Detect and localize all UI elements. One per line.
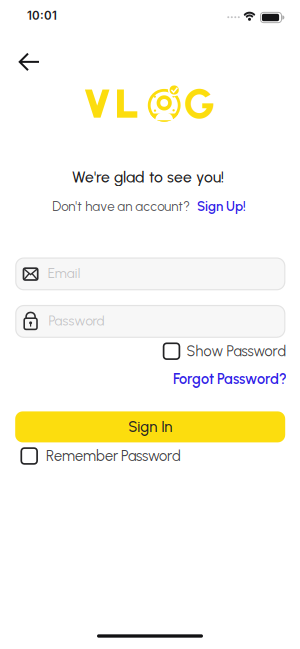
- staticText: G: [184, 79, 216, 128]
- button[interactable]: Show Password: [164, 343, 287, 360]
- staticText: Email: [48, 265, 81, 281]
- staticText: Don't have an account?: [52, 198, 190, 214]
- staticText: We're glad to see you!: [72, 168, 224, 186]
- staticText: Sign Up!: [197, 198, 246, 214]
- button[interactable]: Remember Password: [21, 447, 181, 465]
- button[interactable]: Email: [16, 258, 285, 290]
- button[interactable]: Back: [7, 40, 51, 84]
- staticText: Show Password: [187, 343, 287, 360]
- staticText: Forgot Password?: [173, 370, 287, 388]
- button[interactable]: Sign Up!: [197, 198, 246, 214]
- button[interactable]: Forgot Password?: [173, 370, 287, 388]
- button[interactable]: Sign In: [15, 411, 285, 442]
- staticText: Sign In: [128, 418, 172, 436]
- staticText: Remember Password: [46, 447, 181, 465]
- button[interactable]: Password: [16, 305, 285, 337]
- staticText: Password: [48, 313, 104, 329]
- staticText: 10:01: [27, 8, 57, 22]
